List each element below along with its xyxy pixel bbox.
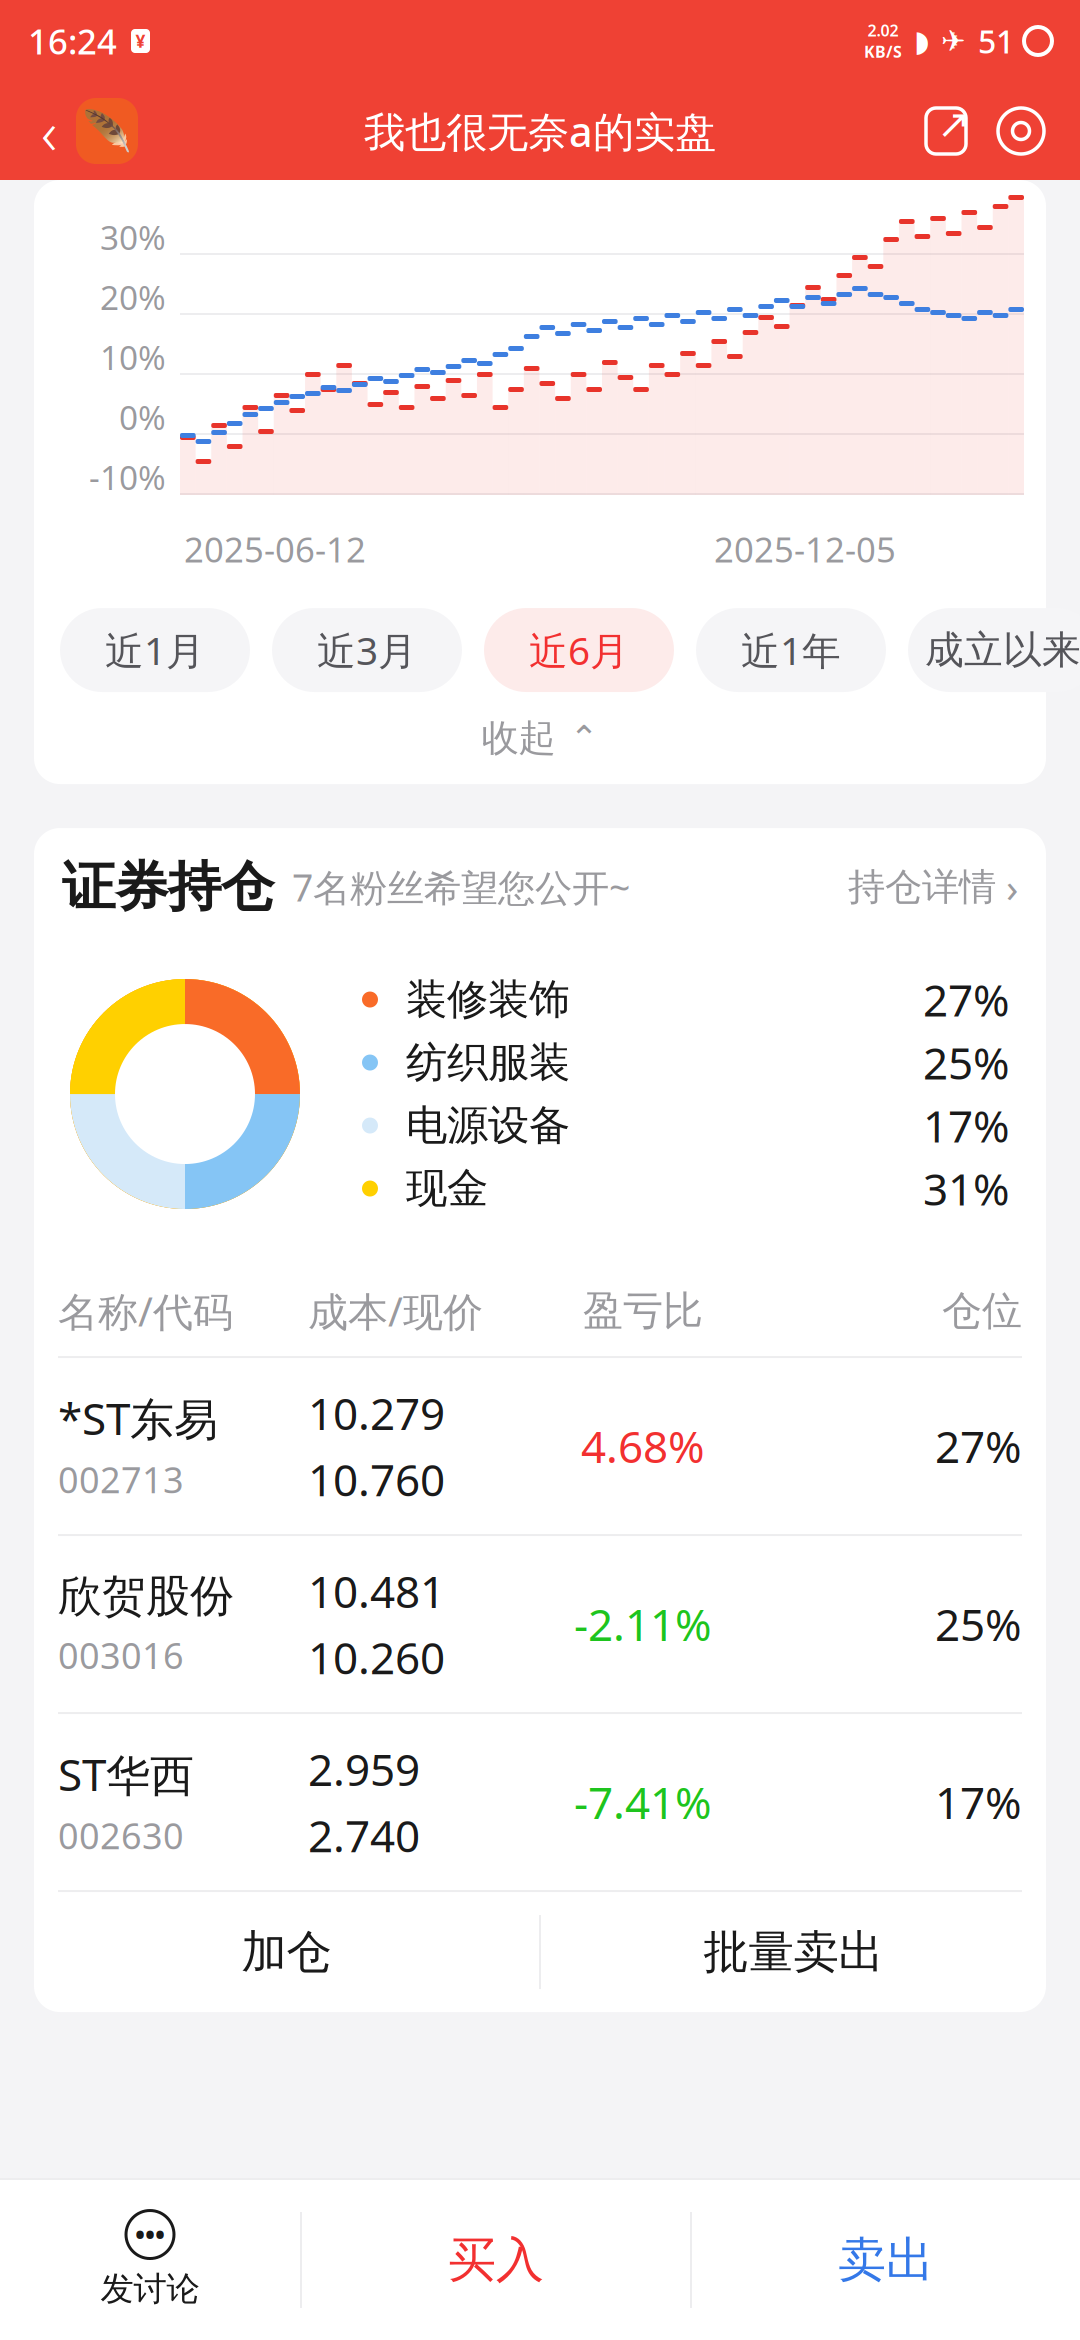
staticText: 🪶 <box>82 108 132 154</box>
staticText: 003016 <box>58 1631 184 1679</box>
staticText: -7.41% <box>574 1773 712 1831</box>
staticText: 16:24 <box>28 18 117 64</box>
staticText: 电源设备 <box>406 1100 570 1151</box>
staticText: 002713 <box>58 1455 184 1503</box>
staticText: 25% <box>923 1033 1010 1092</box>
staticText: 51 <box>978 20 1014 62</box>
staticText: 成立以来 <box>925 626 1080 674</box>
button[interactable]: 近3月 <box>272 608 462 692</box>
staticText: 仓位 <box>942 1286 1022 1336</box>
staticText: 盈亏比 <box>583 1286 703 1336</box>
staticText: 0% <box>119 395 166 439</box>
staticText: 名称/代码 <box>58 1284 233 1338</box>
staticText: ✈ <box>941 24 966 58</box>
staticText: 收起 <box>481 715 555 761</box>
staticText: 25% <box>935 1595 1022 1653</box>
staticText: ¥ <box>135 29 145 52</box>
button[interactable]: 近1月 <box>60 608 250 692</box>
staticText: 27% <box>923 970 1010 1029</box>
staticText: 10.760 <box>308 1450 445 1508</box>
staticText: 2.959 <box>308 1740 420 1798</box>
staticText: 买入 <box>448 2230 544 2289</box>
button[interactable]: 设置 <box>984 94 1058 168</box>
staticText: 002630 <box>58 1811 184 1859</box>
staticText: › <box>1006 860 1018 914</box>
button[interactable]: 成立以来 <box>908 608 1080 692</box>
staticText: 4.68% <box>581 1417 705 1475</box>
staticText: KB/S <box>864 41 902 62</box>
staticText: 加仓 <box>241 1924 331 1980</box>
button[interactable]: 买入 <box>302 2180 690 2340</box>
staticText: 近6月 <box>529 624 629 676</box>
staticText: 近1年 <box>741 624 841 676</box>
staticText: 10.279 <box>308 1384 445 1442</box>
button[interactable]: 批量卖出 <box>541 1892 1046 2012</box>
staticText: ••• <box>135 2217 165 2252</box>
button[interactable]: 加仓 <box>34 1892 539 2012</box>
staticText: 7名粉丝希望您公开~ <box>292 862 630 912</box>
button[interactable]: 分享 <box>908 94 984 168</box>
staticText: 我也很无奈a的实盘 <box>364 104 716 158</box>
staticText: 近1月 <box>105 624 205 676</box>
button[interactable]: 证券持仓 <box>34 828 1046 946</box>
button[interactable]: 近1年 <box>696 608 886 692</box>
button[interactable]: 欣贺股份 <box>34 1536 1046 1712</box>
staticText: 27% <box>935 1417 1022 1475</box>
staticText: 2025-12-05 <box>714 526 896 572</box>
staticText: 20% <box>100 275 166 319</box>
button[interactable]: ••• <box>0 2180 300 2340</box>
staticText: ↗ <box>937 101 971 147</box>
staticText: 17% <box>935 1773 1022 1831</box>
staticText: 30% <box>100 215 166 259</box>
button[interactable]: 卖出 <box>692 2180 1080 2340</box>
staticText: 2.740 <box>308 1806 420 1864</box>
staticText: 2025-06-12 <box>184 526 366 572</box>
staticText: 近3月 <box>317 624 417 676</box>
staticText: 发讨论 <box>100 2268 199 2309</box>
button[interactable]: *ST东易 <box>34 1358 1046 1534</box>
staticText: ST华西 <box>58 1745 194 1803</box>
staticText: ⌃ <box>569 718 598 758</box>
staticText: 10% <box>100 335 166 379</box>
staticText: 10.481 <box>308 1562 445 1620</box>
button[interactable]: ST华西 <box>34 1714 1046 1890</box>
staticText: 欣贺股份 <box>58 1569 234 1623</box>
staticText: 纺织服装 <box>406 1037 570 1088</box>
staticText: 2.02 <box>867 20 898 41</box>
staticText: 现金 <box>406 1163 488 1214</box>
staticText: *ST东易 <box>58 1389 218 1447</box>
staticText: ‹ <box>41 90 57 172</box>
staticText: -10% <box>89 455 166 499</box>
staticText: 17% <box>923 1096 1010 1155</box>
staticText: -2.11% <box>574 1595 712 1653</box>
staticText: 持仓详情 <box>848 864 996 910</box>
button[interactable]: 近6月 <box>484 608 674 692</box>
staticText: 批量卖出 <box>703 1924 883 1980</box>
button[interactable]: 收起 <box>34 692 1046 784</box>
staticText: ◗ <box>914 24 929 58</box>
staticText: 10.260 <box>308 1628 445 1686</box>
staticText: 31% <box>923 1159 1010 1218</box>
button[interactable]: 返回 <box>22 94 76 168</box>
button[interactable]: 东方财富 <box>76 98 138 164</box>
staticText: 装修装饰 <box>406 974 570 1025</box>
staticText: 证券持仓 <box>62 854 274 920</box>
staticText: 成本/现价 <box>308 1284 483 1338</box>
staticText: 卖出 <box>838 2230 934 2289</box>
